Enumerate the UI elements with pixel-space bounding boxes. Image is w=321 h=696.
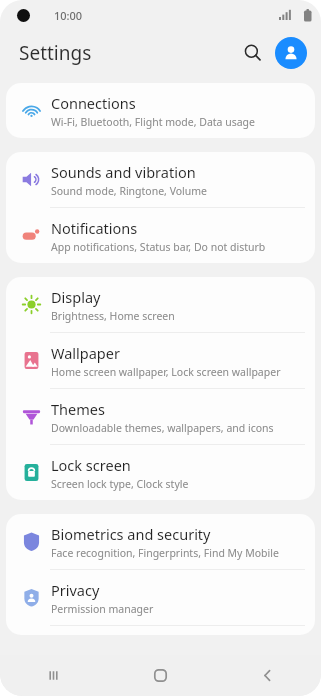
staticText: App notifications, Status bar, Do not di… (51, 240, 266, 254)
staticText: Permission manager (51, 602, 154, 616)
staticText: Connections (51, 93, 136, 113)
button[interactable]: Notifications (6, 208, 315, 263)
button[interactable]: Sounds and vibration (6, 152, 315, 207)
button[interactable]: Home (107, 655, 214, 696)
button[interactable]: Back (214, 655, 321, 696)
button[interactable]: Connections (6, 83, 315, 138)
staticText: Notifications (51, 218, 138, 238)
button[interactable]: Recents (0, 655, 107, 696)
staticText: Face recognition, Fingerprints, Find My … (51, 546, 279, 560)
button[interactable]: Biometrics and security (6, 514, 315, 569)
button[interactable]: Privacy (6, 570, 315, 625)
button[interactable]: Display (6, 277, 315, 332)
staticText: Downloadable themes, wallpapers, and ico… (51, 421, 274, 435)
staticText: 10:00 (54, 8, 83, 23)
staticText: Screen lock type, Clock style (51, 477, 189, 491)
button[interactable]: Themes (6, 389, 315, 444)
staticText: Home screen wallpaper, Lock screen wallp… (51, 365, 281, 379)
button[interactable]: Search (236, 36, 270, 70)
staticText: Brightness, Home screen (51, 309, 175, 323)
staticText: Sound mode, Ringtone, Volume (51, 184, 208, 198)
staticText: Settings (19, 40, 92, 66)
staticText: Privacy (51, 580, 100, 600)
staticText: Lock screen (51, 455, 131, 475)
staticText: Wallpaper (51, 343, 120, 363)
staticText: Themes (51, 399, 105, 419)
button[interactable]: Lock screen (6, 445, 315, 500)
button[interactable]: Wallpaper (6, 333, 315, 388)
staticText: Sounds and vibration (51, 162, 196, 182)
staticText: Biometrics and security (51, 524, 211, 544)
button[interactable]: Account (275, 37, 307, 69)
staticText: Wi-Fi, Bluetooth, Flight mode, Data usag… (51, 115, 256, 129)
staticText: Display (51, 287, 101, 307)
